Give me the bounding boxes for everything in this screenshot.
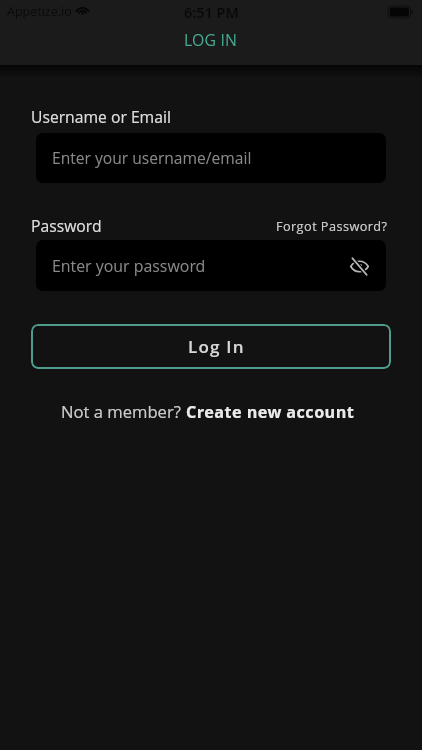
staticText: Appetize.io bbox=[7, 3, 72, 20]
staticText: Not a member? bbox=[61, 400, 186, 423]
staticText: Username or Email bbox=[31, 106, 171, 127]
staticText: Create new account bbox=[186, 401, 355, 423]
staticText: Password bbox=[31, 215, 102, 236]
button[interactable]: Create new account bbox=[186, 401, 355, 423]
staticText: Log In bbox=[188, 335, 245, 358]
button[interactable]: Forgot Password? bbox=[276, 217, 388, 234]
button[interactable]: LOG IN bbox=[184, 29, 238, 51]
button[interactable]: Show password bbox=[344, 251, 374, 281]
staticText: Enter your password bbox=[52, 255, 206, 277]
staticText: 6:51 PM bbox=[184, 3, 239, 23]
button[interactable]: Enter your username/email bbox=[36, 133, 386, 183]
staticText: Enter your username/email bbox=[52, 147, 252, 168]
button[interactable]: Log In bbox=[31, 324, 391, 369]
button[interactable]: Enter your password bbox=[36, 240, 386, 291]
